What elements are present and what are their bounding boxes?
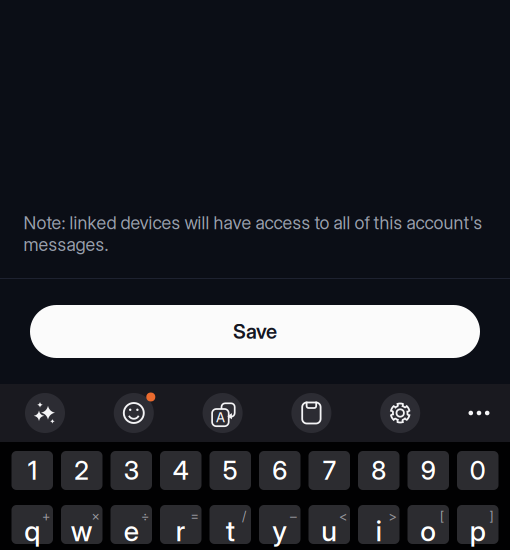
button[interactable]: 5 bbox=[209, 451, 251, 490]
staticText: – bbox=[290, 508, 297, 524]
staticText: p bbox=[470, 514, 486, 548]
staticText: 1 bbox=[28, 455, 37, 486]
staticText: = bbox=[190, 508, 198, 524]
button[interactable]: × bbox=[61, 505, 102, 544]
staticText: × bbox=[91, 508, 99, 524]
button[interactable]: ÷ bbox=[110, 505, 152, 544]
button[interactable]: – bbox=[259, 505, 300, 544]
button[interactable]: / bbox=[209, 505, 251, 544]
button[interactable]: Clipboard bbox=[291, 393, 331, 433]
staticText: 2 bbox=[74, 455, 89, 486]
button[interactable]: < bbox=[308, 505, 350, 544]
staticText: 8 bbox=[371, 455, 386, 486]
staticText: 9 bbox=[421, 455, 436, 486]
button[interactable]: 7 bbox=[308, 451, 350, 490]
staticText: 7 bbox=[323, 455, 336, 486]
button[interactable]: 6 bbox=[259, 451, 300, 490]
staticText: y bbox=[272, 514, 287, 548]
staticText: 3 bbox=[124, 455, 139, 486]
button[interactable]: 2 bbox=[61, 451, 102, 490]
button[interactable]: = bbox=[160, 505, 201, 544]
staticText: 6 bbox=[272, 455, 287, 486]
staticText: 5 bbox=[223, 455, 238, 486]
staticText: i bbox=[376, 514, 382, 548]
staticText: r bbox=[176, 514, 186, 548]
button[interactable]: ] bbox=[457, 505, 498, 544]
button[interactable]: 8 bbox=[358, 451, 399, 490]
staticText: > bbox=[388, 508, 396, 524]
staticText: / bbox=[242, 508, 246, 524]
staticText: ] bbox=[489, 508, 493, 524]
staticText: q bbox=[24, 514, 40, 548]
button[interactable]: Translate bbox=[203, 393, 243, 433]
staticText: A bbox=[216, 409, 225, 425]
staticText: o bbox=[420, 514, 436, 548]
staticText: 4 bbox=[173, 455, 189, 486]
staticText: Save bbox=[233, 319, 277, 344]
staticText: u bbox=[321, 514, 337, 548]
button[interactable]: 1 bbox=[11, 451, 53, 490]
button[interactable]: > bbox=[358, 505, 399, 544]
button[interactable]: More options bbox=[469, 393, 489, 433]
button[interactable]: Emoji bbox=[114, 393, 154, 433]
button[interactable]: [ bbox=[407, 505, 449, 544]
staticText: t bbox=[226, 514, 235, 548]
staticText: 0 bbox=[470, 455, 486, 486]
staticText: + bbox=[42, 508, 50, 524]
button[interactable]: Save bbox=[30, 305, 480, 358]
button[interactable]: + bbox=[11, 505, 53, 544]
button[interactable]: 4 bbox=[160, 451, 201, 490]
button[interactable]: 0 bbox=[457, 451, 498, 490]
staticText: Note: linked devices will have access to… bbox=[23, 212, 482, 255]
staticText: e bbox=[124, 514, 139, 548]
staticText: ÷ bbox=[141, 508, 149, 524]
button[interactable]: 3 bbox=[110, 451, 152, 490]
staticText: < bbox=[339, 508, 347, 524]
staticText: [ bbox=[440, 508, 444, 524]
staticText: w bbox=[71, 514, 93, 548]
button[interactable]: 9 bbox=[407, 451, 449, 490]
button[interactable]: Settings bbox=[380, 393, 420, 433]
button[interactable]: AI suggestions bbox=[25, 393, 65, 433]
